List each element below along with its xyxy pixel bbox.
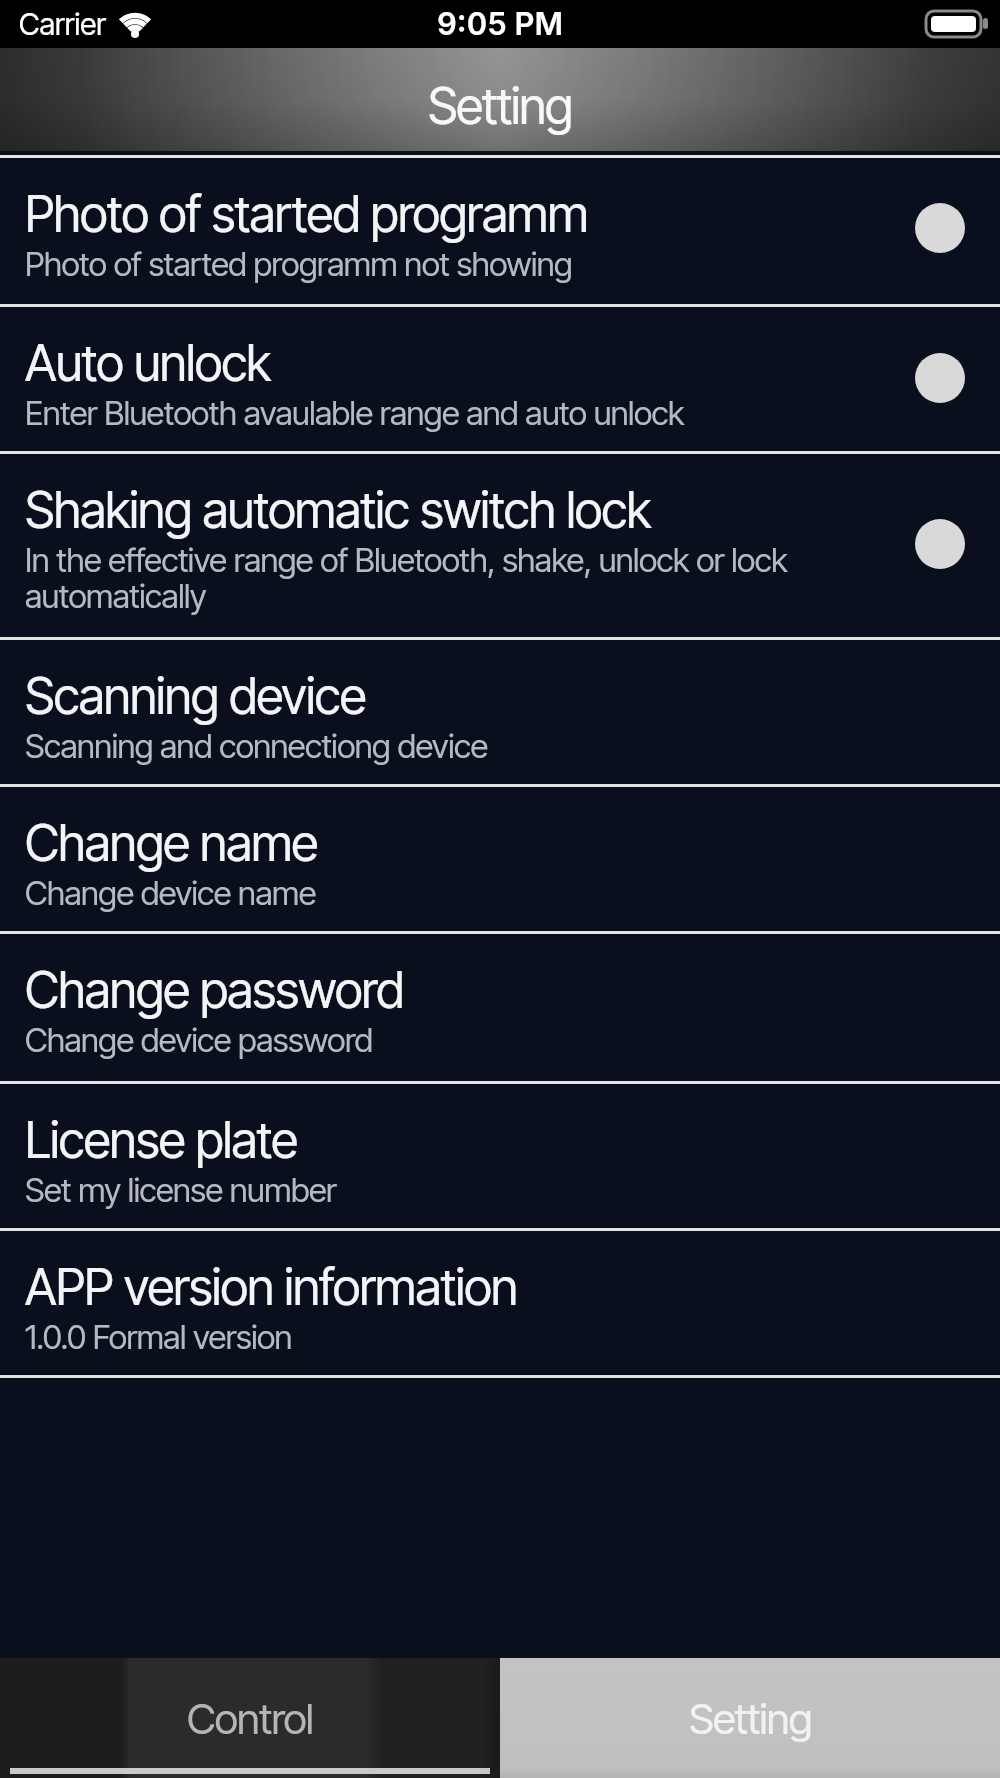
staticText: Auto unlock xyxy=(25,333,271,393)
staticText: Change name xyxy=(25,813,318,873)
button[interactable] xyxy=(915,353,965,403)
button[interactable]: Auto unlock xyxy=(0,304,1000,451)
button[interactable]: Change password xyxy=(0,931,1000,1081)
button[interactable]: Control xyxy=(0,1658,500,1778)
staticText: Scanning and connectiong device xyxy=(25,726,488,766)
staticText: Scanning device xyxy=(25,666,366,726)
button[interactable]: Photo of started programm xyxy=(0,151,1000,304)
button[interactable] xyxy=(915,203,965,253)
staticText: Setting xyxy=(689,1693,812,1744)
staticText: Setting xyxy=(428,76,573,136)
button[interactable] xyxy=(915,519,965,569)
button[interactable]: License plate xyxy=(0,1081,1000,1228)
staticText: Change device password xyxy=(25,1020,373,1060)
button[interactable]: APP version information xyxy=(0,1228,1000,1375)
staticText: Change password xyxy=(25,960,404,1020)
staticText: Photo of started programm xyxy=(25,184,588,244)
staticText: APP version information xyxy=(25,1257,518,1317)
staticText: 1.0.0 Formal version xyxy=(25,1317,292,1357)
staticText: Enter Bluetooth avaulable range and auto… xyxy=(25,393,684,433)
staticText: Carrier xyxy=(19,6,106,42)
button[interactable]: Change name xyxy=(0,784,1000,931)
button[interactable]: Setting xyxy=(500,1658,1000,1778)
staticText: 9:05 PM xyxy=(437,5,564,43)
button[interactable]: Scanning device xyxy=(0,637,1000,784)
staticText: Set my license number xyxy=(25,1170,337,1210)
staticText: Change device name xyxy=(25,873,316,913)
staticText: Shaking automatic switch lock xyxy=(25,480,651,540)
staticText: In the effective range of Bluetooth, sha… xyxy=(25,540,788,616)
staticText: License plate xyxy=(25,1110,298,1170)
staticText: Photo of started programm not showing xyxy=(25,244,573,284)
staticText: Control xyxy=(187,1693,314,1744)
button[interactable]: Shaking automatic switch lock xyxy=(0,451,1000,637)
